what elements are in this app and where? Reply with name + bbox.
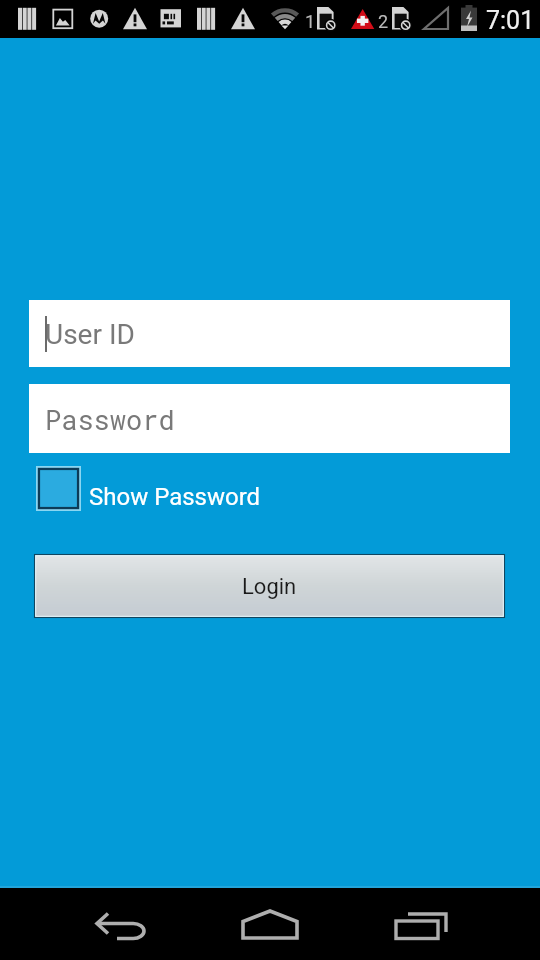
button[interactable]: Recent apps [370, 888, 470, 960]
button[interactable]: Login [34, 554, 505, 619]
button[interactable]: Password [29, 384, 510, 453]
staticText: 7:01 [486, 6, 535, 35]
staticText: 2 [378, 11, 389, 32]
staticText: Show Password [89, 483, 261, 511]
staticText: User ID [45, 318, 135, 351]
button[interactable]: Home [215, 888, 325, 960]
button[interactable]: User ID [29, 300, 510, 367]
button[interactable]: Back [70, 888, 170, 960]
staticText: Password [45, 402, 175, 438]
staticText: 1 [305, 11, 316, 32]
staticText: Login [242, 574, 297, 600]
button[interactable]: Show Password [31, 462, 263, 515]
